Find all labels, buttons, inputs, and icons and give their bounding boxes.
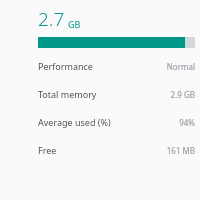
button[interactable]: Free bbox=[38, 136, 195, 164]
staticText: Normal bbox=[166, 61, 195, 72]
button[interactable]: Total memory bbox=[38, 80, 195, 108]
staticText: Free bbox=[38, 144, 57, 156]
staticText: Average used (%) bbox=[38, 116, 111, 128]
staticText: 2.9 GB bbox=[170, 89, 195, 100]
button[interactable]: Average used (%) bbox=[38, 108, 195, 136]
staticText: 94% bbox=[179, 117, 195, 128]
button[interactable]: Performance bbox=[38, 52, 195, 80]
staticText: GB bbox=[68, 18, 81, 30]
staticText: Total memory bbox=[38, 88, 97, 100]
staticText: 2.7 bbox=[38, 6, 65, 32]
staticText: Performance bbox=[38, 60, 93, 72]
staticText: 161 MB bbox=[166, 145, 195, 156]
